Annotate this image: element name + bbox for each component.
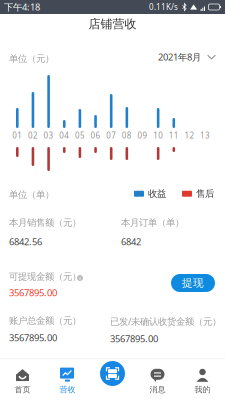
staticText: 下午4:18 (4, 1, 40, 13)
staticText: 6842 (121, 235, 141, 248)
staticText: 12 (184, 130, 194, 141)
staticText: 账户总金额（元） (9, 315, 81, 326)
staticText: 07 (106, 130, 116, 141)
staticText: 11 (169, 130, 179, 141)
staticText: 05 (75, 130, 85, 141)
staticText: 06 (90, 130, 100, 141)
staticText: 营收 (59, 385, 75, 394)
button[interactable]: 扫一扫 (100, 361, 125, 386)
staticText: 09 (137, 130, 147, 141)
button[interactable]: 2021年8月 (158, 50, 216, 64)
staticText: 单位（元） (9, 53, 54, 64)
staticText: 0.11K/s (149, 2, 178, 12)
staticText: 收益 (148, 188, 166, 199)
staticText: 可提现金额（元） (9, 271, 81, 282)
staticText: 售后 (196, 188, 214, 199)
button[interactable]: 我的 (180, 363, 225, 399)
staticText: 3567895.00 (110, 332, 158, 345)
button[interactable]: 消息 (135, 363, 180, 399)
staticText: 6842.56 (9, 235, 42, 248)
staticText: 首页 (14, 385, 30, 394)
staticText: 本月销售额（元） (9, 217, 81, 228)
staticText: 02 (28, 130, 38, 141)
staticText: 04 (59, 130, 69, 141)
staticText: 13 (200, 130, 210, 141)
staticText: 01 (12, 130, 22, 141)
staticText: 08 (122, 130, 132, 141)
button[interactable]: 提现 (171, 274, 215, 292)
staticText: 单位（单） (9, 189, 54, 200)
staticText: 3567895.00 (9, 331, 57, 344)
button[interactable]: 营收 (45, 363, 90, 399)
staticText: 消息 (149, 385, 165, 394)
staticText: 3567895.00 (9, 286, 57, 299)
staticText: 10 (153, 130, 163, 141)
staticText: 已发/未确认收货金额（元） (110, 315, 221, 327)
staticText: 店铺营收 (88, 17, 136, 31)
staticText: 提现 (182, 276, 204, 289)
staticText: 本月订单（单） (121, 217, 184, 228)
staticText: 我的 (194, 385, 210, 394)
button[interactable]: 首页 (0, 363, 45, 399)
staticText: 2021年8月 (158, 51, 201, 63)
staticText: 03 (44, 130, 54, 141)
